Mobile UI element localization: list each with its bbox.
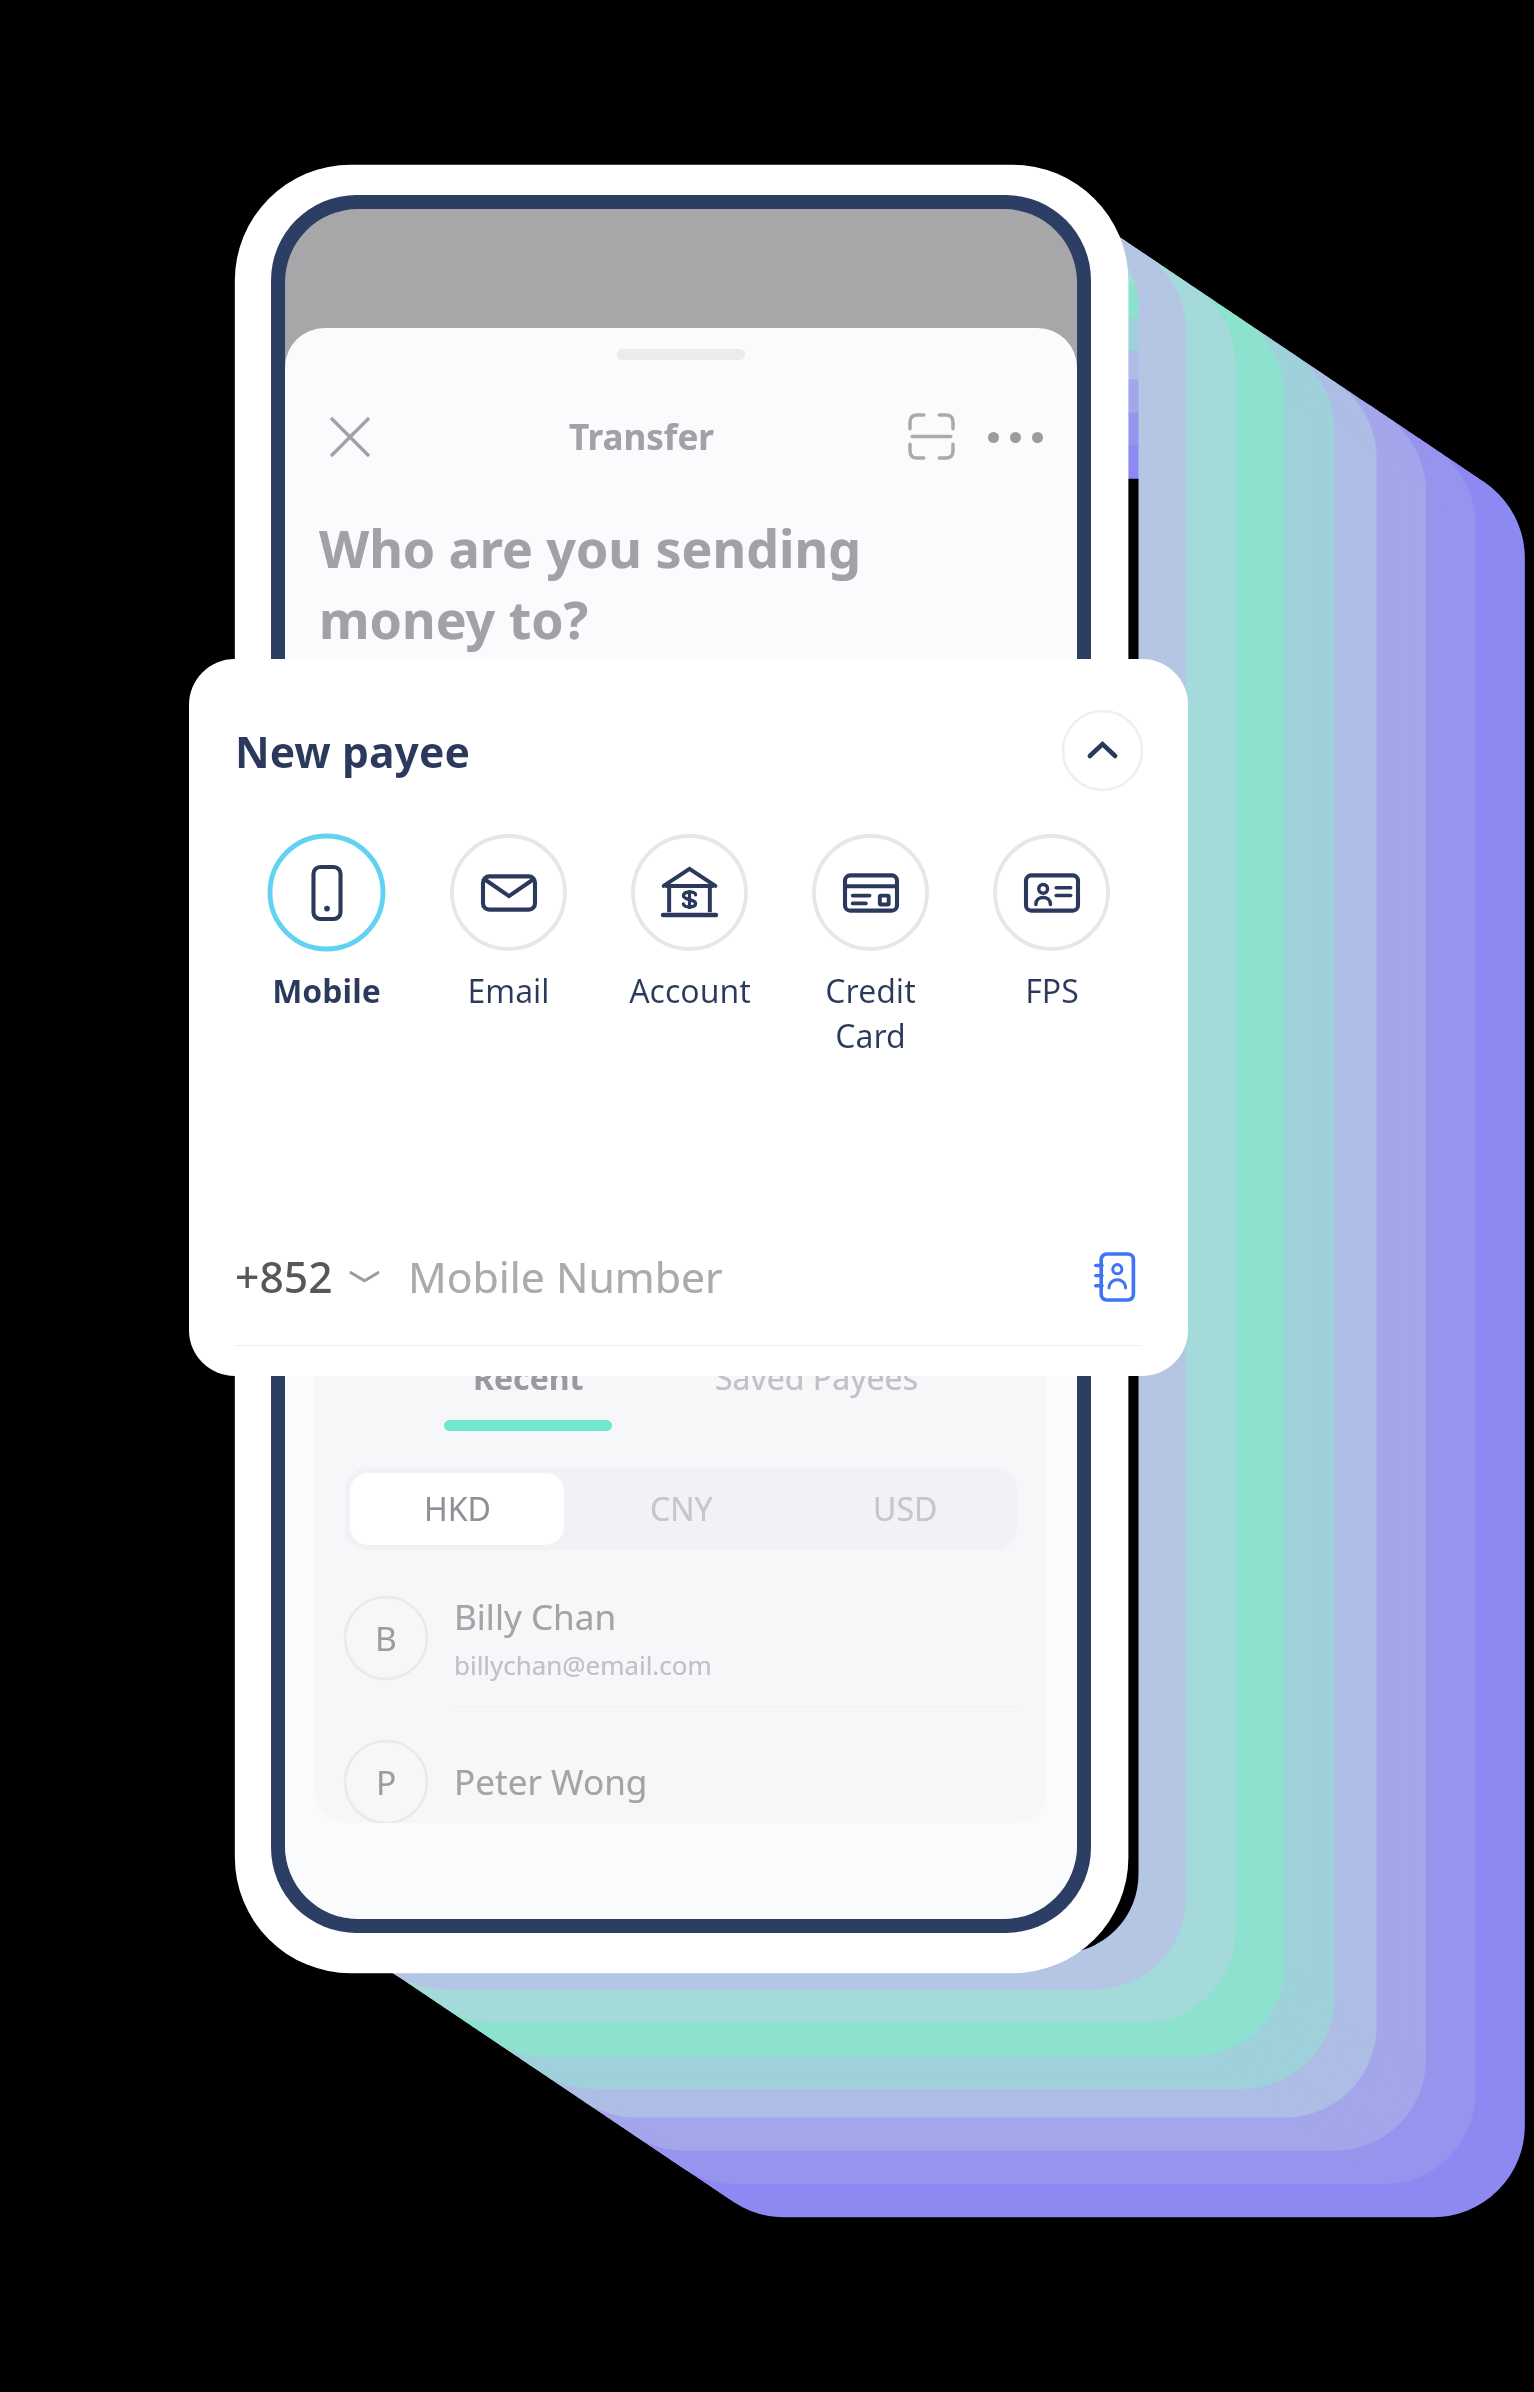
staticText: Mobile Number	[408, 1247, 723, 1305]
staticText: Recent	[473, 1356, 584, 1400]
button[interactable]: FPS	[961, 836, 1142, 1013]
staticText: USD	[873, 1487, 938, 1531]
staticText: billychan@email.com	[454, 1647, 712, 1682]
button[interactable]: Collapse	[1063, 711, 1142, 790]
staticText: HKD	[424, 1487, 491, 1531]
button[interactable]: +852	[235, 1247, 1142, 1305]
staticText: Saved Payees	[715, 1356, 918, 1400]
button[interactable]: Mobile	[235, 836, 417, 1013]
button[interactable]: Credit Card	[780, 836, 961, 1057]
button[interactable]: Close	[315, 402, 385, 472]
staticText: +852	[235, 1247, 333, 1305]
button[interactable]: Account	[599, 836, 780, 1013]
button[interactable]: Saved Payees	[697, 1356, 936, 1400]
staticText: FPS	[1025, 969, 1079, 1013]
staticText: B	[375, 1615, 397, 1661]
staticText: Credit Card	[825, 969, 916, 1057]
button[interactable]: USD	[798, 1473, 1012, 1545]
button[interactable]: P	[315, 1741, 1047, 1823]
button[interactable]: CNY	[574, 1473, 788, 1545]
button[interactable]: Email	[417, 836, 599, 1013]
staticText: New payee	[235, 722, 470, 780]
staticText: Email	[467, 969, 550, 1013]
staticText: Peter Wong	[454, 1758, 648, 1806]
staticText: Mobile	[272, 969, 381, 1013]
button[interactable]: Recent	[426, 1356, 630, 1431]
button[interactable]: More options	[983, 405, 1047, 469]
button[interactable]: HKD	[350, 1473, 564, 1545]
staticText: Billy Chan	[454, 1593, 617, 1641]
staticText: Who are you sending money to?	[319, 513, 861, 654]
button[interactable]: Choose from contacts	[1087, 1249, 1142, 1304]
button[interactable]: Scan code	[898, 403, 965, 470]
button[interactable]: B	[315, 1593, 1047, 1741]
staticText: P	[376, 1759, 397, 1805]
staticText: Transfer	[569, 413, 715, 461]
staticText: Account	[629, 969, 751, 1013]
staticText: CNY	[650, 1487, 713, 1531]
